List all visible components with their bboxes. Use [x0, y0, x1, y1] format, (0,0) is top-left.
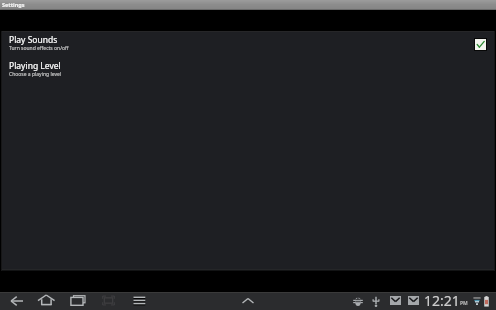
staticText: Choose a playing level [9, 71, 62, 78]
staticText: Turn sound effects on/off [9, 45, 69, 52]
button[interactable]: Play Sounds [2, 30, 494, 55]
staticText: PM [460, 300, 468, 307]
staticText: Play Sounds [9, 34, 58, 46]
staticText: 12:21 [424, 291, 460, 309]
staticText: Playing Level [9, 60, 61, 72]
staticText: Settings [2, 1, 25, 8]
button[interactable]: Screenshot [102, 295, 115, 306]
button[interactable]: Back [10, 296, 23, 306]
button[interactable]: Recent apps [70, 295, 86, 308]
button[interactable]: Expand status [242, 298, 254, 303]
button[interactable]: Menu [133, 296, 146, 307]
button[interactable]: Home [37, 294, 56, 308]
button[interactable]: Playing Level [2, 56, 494, 81]
